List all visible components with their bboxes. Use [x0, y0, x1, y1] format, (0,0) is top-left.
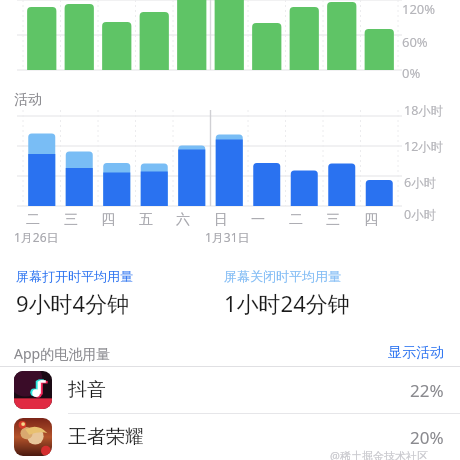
staticText: 60% [402, 33, 428, 51]
staticText: 王者荣耀 [68, 425, 144, 449]
staticText: 6小时 [404, 174, 437, 191]
staticText: 抖音 [68, 378, 106, 402]
staticText: 1月26日 [14, 229, 59, 245]
staticText: 12小时 [404, 138, 444, 155]
staticText: 20% [410, 426, 444, 449]
button[interactable]: 王者荣耀 [0, 414, 460, 460]
button[interactable]: 屏幕关闭时平均用量 [222, 266, 352, 320]
staticText: 显示活动 [388, 344, 444, 362]
staticText: 四 [101, 211, 115, 229]
staticText: 0小时 [404, 206, 437, 223]
staticText: 三 [64, 211, 78, 229]
staticText: 18小时 [404, 102, 444, 119]
staticText: 四 [364, 211, 378, 229]
staticText: 22% [410, 379, 444, 402]
staticText: 0% [402, 64, 421, 82]
staticText: 活动 [14, 91, 42, 109]
staticText: 屏幕关闭时平均用量 [224, 268, 341, 284]
staticText: 五 [139, 211, 153, 229]
staticText: App的电池用量 [14, 344, 111, 363]
staticText: 9小时4分钟 [16, 288, 130, 318]
staticText: 三 [326, 211, 340, 229]
button[interactable]: 显示活动 [386, 342, 446, 364]
staticText: 一 [251, 211, 265, 229]
button[interactable]: 屏幕打开时平均用量 [14, 266, 135, 320]
staticText: 1小时24分钟 [224, 288, 350, 318]
staticText: 六 [176, 211, 190, 229]
staticText: 二 [26, 211, 40, 229]
staticText: 屏幕打开时平均用量 [16, 268, 133, 284]
staticText: @稀土掘金技术社区 [330, 448, 428, 460]
staticText: 日 [214, 211, 228, 229]
staticText: 二 [289, 211, 303, 229]
button[interactable]: 抖音 [0, 367, 460, 413]
staticText: 120% [402, 0, 436, 18]
staticText: 1月31日 [205, 229, 250, 245]
